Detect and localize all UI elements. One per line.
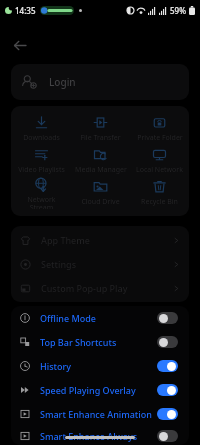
staticText: Login (49, 75, 76, 89)
staticText: File Transfer (80, 133, 121, 143)
staticText: Smart Enhance Animation (40, 408, 152, 420)
staticText: Smart Enhance Always (40, 430, 138, 442)
button[interactable]: Downloads (11, 113, 71, 145)
button[interactable]: Network Stream (11, 177, 71, 209)
button[interactable]: File Transfer (71, 113, 130, 145)
staticText: Cloud Drive (81, 197, 120, 207)
staticText: Private Folder (137, 133, 183, 143)
button[interactable]: Smart Enhance Animation (11, 402, 189, 426)
staticText: App Theme (41, 234, 90, 246)
button[interactable]: Media Manager (71, 145, 130, 177)
button[interactable]: Cloud Drive (71, 177, 130, 209)
staticText: Downloads (23, 133, 60, 143)
staticText: Local Network (136, 165, 183, 175)
button[interactable]: Speed Playing Overlay (11, 378, 189, 402)
staticText: Settings (41, 258, 77, 270)
staticText: Recycle Bin (141, 197, 178, 207)
staticText: Media Manager (75, 165, 127, 175)
button[interactable]: Video Playlists (11, 145, 71, 177)
button[interactable]: Back (8, 34, 30, 56)
button[interactable]: App Theme (11, 228, 189, 252)
staticText: Custom Pop-up Play (41, 282, 128, 294)
button[interactable]: Top Bar Shortcuts (11, 330, 189, 354)
button[interactable]: Private Folder (130, 113, 189, 145)
staticText: 14:35 (15, 5, 36, 16)
button[interactable]: Login (11, 64, 189, 100)
staticText: History (40, 360, 72, 372)
staticText: 59% (170, 5, 186, 16)
staticText: Top Bar Shortcuts (40, 336, 117, 348)
staticText: Network Stream (27, 195, 56, 209)
button[interactable]: Local Network (130, 145, 189, 177)
staticText: Offline Mode (40, 312, 97, 324)
button[interactable]: Smart Enhance Always (11, 426, 189, 445)
button[interactable]: Custom Pop-up Play (11, 276, 189, 300)
button[interactable]: Recycle Bin (130, 177, 189, 209)
button[interactable]: History (11, 354, 189, 378)
button[interactable]: Offline Mode (11, 306, 189, 330)
staticText: Speed Playing Overlay (40, 384, 136, 396)
staticText: Video Playlists (18, 165, 65, 175)
